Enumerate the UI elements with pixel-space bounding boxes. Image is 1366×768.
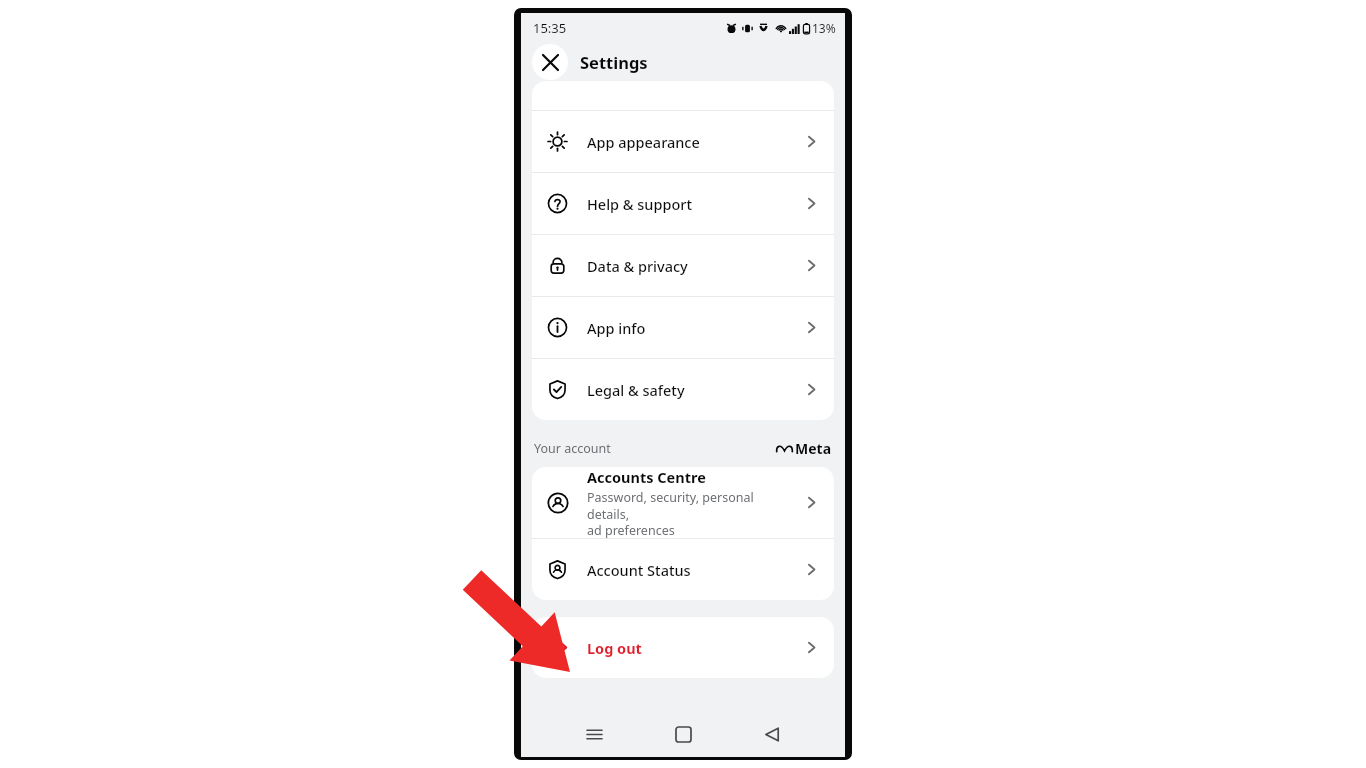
staticText: Your account <box>534 440 611 457</box>
button[interactable]: Help & support <box>532 173 834 234</box>
staticText: 13% <box>812 20 836 36</box>
button[interactable]: Home <box>663 714 703 754</box>
button[interactable]: Data & privacy <box>532 235 834 296</box>
button[interactable]: Legal & safety <box>532 359 834 420</box>
button[interactable]: Back <box>752 714 792 754</box>
staticText: Help & support <box>587 194 804 214</box>
button[interactable]: Accounts Centre <box>532 467 834 538</box>
staticText: Password, security, personal details, ad… <box>587 489 798 538</box>
staticText: App appearance <box>587 132 804 152</box>
button[interactable]: Close <box>532 44 568 80</box>
staticText: Account Status <box>587 560 804 580</box>
staticText: Log out <box>587 638 804 658</box>
staticText: 15:35 <box>533 19 567 37</box>
button[interactable]: Account Status <box>532 539 834 600</box>
staticText: Meta <box>795 439 832 458</box>
button[interactable]: App appearance <box>532 111 834 172</box>
staticText: Legal & safety <box>587 380 804 400</box>
staticText: Accounts Centre <box>587 467 706 487</box>
staticText: Settings <box>580 51 648 73</box>
staticText: Data & privacy <box>587 256 804 276</box>
button[interactable]: Recents <box>574 714 614 754</box>
button[interactable]: App info <box>532 297 834 358</box>
button[interactable]: Log out <box>532 617 834 678</box>
staticText: App info <box>587 318 804 338</box>
